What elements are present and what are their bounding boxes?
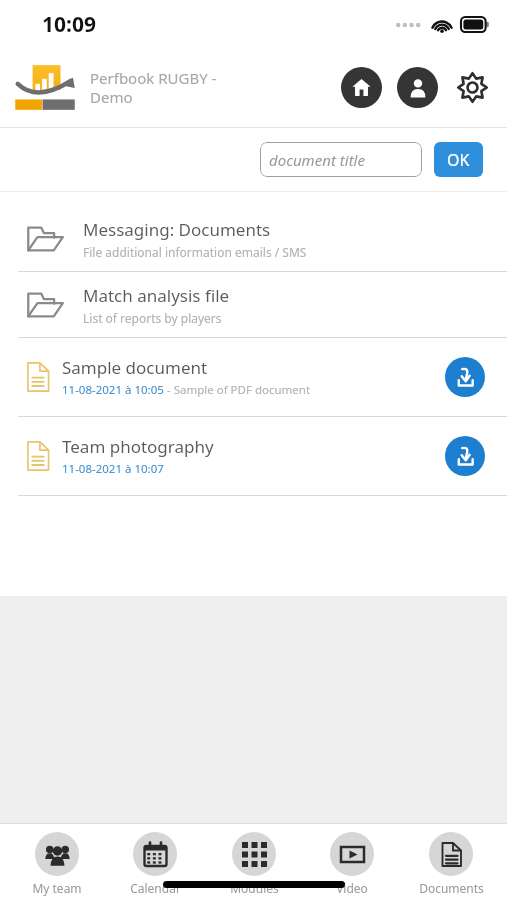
staticText: document title bbox=[269, 150, 365, 170]
staticText: Modules bbox=[230, 880, 279, 896]
button[interactable]: My team bbox=[15, 832, 99, 896]
button[interactable]: Settings bbox=[452, 67, 493, 108]
staticText: 11-08-2021 à 10:05 bbox=[62, 382, 164, 398]
staticText: Team photography bbox=[62, 435, 214, 458]
staticText: - Sample of PDF document bbox=[164, 382, 311, 398]
button[interactable]: Home bbox=[341, 67, 382, 108]
staticText: Messaging: Documents bbox=[83, 218, 271, 241]
staticText: 10:09 bbox=[42, 10, 96, 39]
staticText: Perfbook RUGBY - Demo bbox=[90, 68, 341, 107]
button[interactable]: Download Sample document bbox=[445, 357, 485, 397]
staticText: List of reports by players bbox=[83, 310, 222, 326]
button[interactable]: Match analysis file bbox=[0, 272, 507, 337]
button[interactable]: Profile bbox=[397, 67, 438, 108]
button[interactable]: document title bbox=[260, 142, 422, 177]
button[interactable]: Modules bbox=[212, 832, 296, 896]
staticText: File additional information emails / SMS bbox=[83, 244, 307, 260]
staticText: OK bbox=[447, 149, 470, 171]
button[interactable]: Download Team photography bbox=[445, 436, 485, 476]
button[interactable]: Video bbox=[310, 832, 394, 896]
staticText: 11-08-2021 à 10:07 bbox=[62, 461, 164, 477]
staticText: Match analysis file bbox=[83, 284, 230, 307]
button[interactable]: Documents bbox=[409, 832, 493, 896]
staticText: Calendar bbox=[130, 880, 181, 896]
button[interactable]: Calendar bbox=[113, 832, 197, 896]
button[interactable]: Team photography bbox=[0, 417, 507, 495]
button[interactable]: Sample document bbox=[0, 338, 507, 416]
button[interactable]: Messaging: Documents bbox=[0, 206, 507, 271]
staticText: Sample document bbox=[62, 356, 208, 379]
staticText: Video bbox=[336, 880, 368, 896]
staticText: My team bbox=[32, 880, 82, 896]
staticText: Documents bbox=[419, 880, 484, 896]
button[interactable]: OK bbox=[434, 142, 483, 177]
